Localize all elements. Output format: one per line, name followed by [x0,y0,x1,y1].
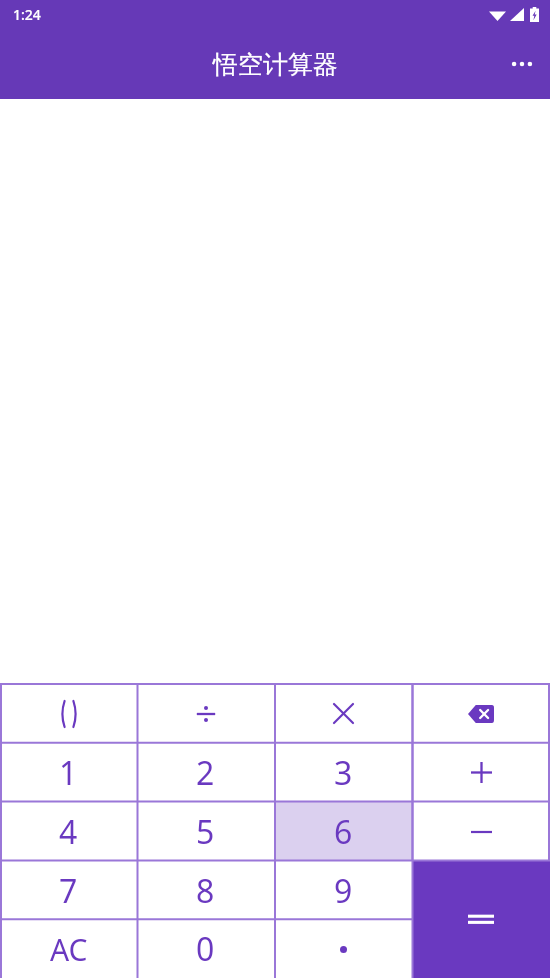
button[interactable]: Equals [412,860,550,978]
staticText: 悟空计算器 [213,49,338,80]
button[interactable]: 4 [0,802,137,861]
staticText: 5 [196,810,215,854]
button[interactable]: 1 [0,743,137,802]
button[interactable]: Multiply [274,684,412,743]
button[interactable]: 6 [274,802,412,861]
staticText: 4 [59,810,78,854]
staticText: 7 [59,869,78,913]
button[interactable]: 5 [137,802,274,861]
button[interactable]: 7 [0,861,137,920]
staticText: 2 [196,751,215,795]
button[interactable]: Parentheses [0,684,137,743]
staticText: 8 [196,869,215,913]
button[interactable]: More options [494,36,550,92]
staticText: 6 [334,810,353,854]
button[interactable]: 2 [137,743,274,802]
button[interactable]: 0 [137,920,274,978]
staticText: AC [50,929,88,970]
staticText: 3 [334,751,353,795]
button[interactable] [274,920,412,978]
button[interactable]: Plus [412,743,550,802]
button[interactable]: Divide [137,684,274,743]
button[interactable]: 9 [274,861,412,920]
staticText: 0 [196,927,215,971]
button[interactable]: AC [0,920,137,978]
staticText: 1 [59,751,78,795]
button[interactable]: Backspace [412,684,550,743]
button[interactable]: 3 [274,743,412,802]
button[interactable]: 8 [137,861,274,920]
staticText: 9 [334,869,353,913]
button[interactable]: Minus [412,802,550,861]
staticText: 1:24 [13,5,41,24]
